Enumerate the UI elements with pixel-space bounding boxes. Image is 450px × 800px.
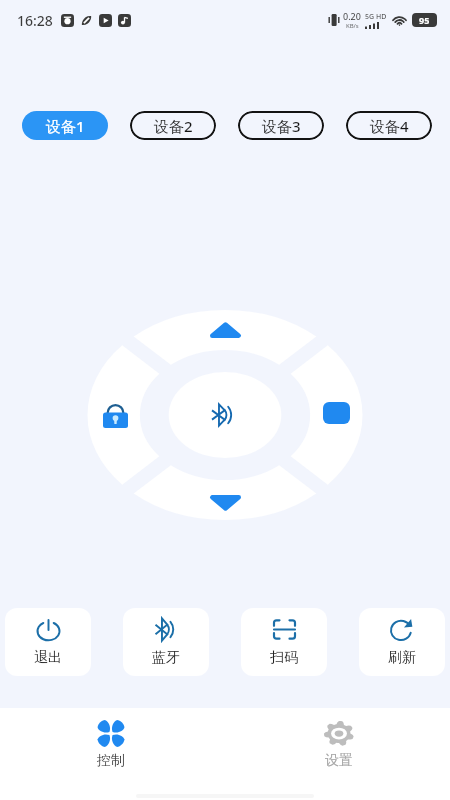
staticText: 控制 [97, 752, 125, 770]
staticText: 0.20 [343, 10, 361, 22]
button[interactable]: 设备4 [346, 111, 432, 140]
button[interactable]: 控制 [80, 719, 142, 772]
staticText: 设置 [325, 752, 353, 770]
staticText: 设备1 [46, 116, 85, 136]
button[interactable]: Bluetooth [212, 404, 239, 426]
staticText: 设备4 [370, 116, 409, 136]
button[interactable]: 刷新 [359, 608, 445, 676]
button[interactable]: 退出 [5, 608, 91, 676]
staticText: 设备2 [154, 116, 193, 136]
button[interactable]: 扫码 [241, 608, 327, 676]
staticText: 设备3 [262, 116, 301, 136]
button[interactable]: Lock [103, 402, 128, 428]
staticText: 95 [419, 14, 430, 26]
button[interactable]: 设备3 [238, 111, 324, 140]
button[interactable]: Stop [323, 402, 350, 424]
staticText: 5G HD [365, 12, 387, 22]
button[interactable]: Up [210, 323, 241, 337]
staticText: 扫码 [270, 649, 298, 667]
button[interactable]: 设备1 [22, 111, 108, 140]
staticText: 刷新 [388, 649, 416, 667]
button[interactable]: Down [210, 496, 241, 510]
staticText: 退出 [34, 649, 62, 667]
staticText: 16:28 [17, 11, 53, 30]
button[interactable]: 蓝牙 [123, 608, 209, 676]
button[interactable]: 设备2 [130, 111, 216, 140]
button[interactable]: 设置 [308, 719, 370, 772]
staticText: 蓝牙 [152, 649, 180, 667]
staticText: KB/s [346, 22, 359, 30]
